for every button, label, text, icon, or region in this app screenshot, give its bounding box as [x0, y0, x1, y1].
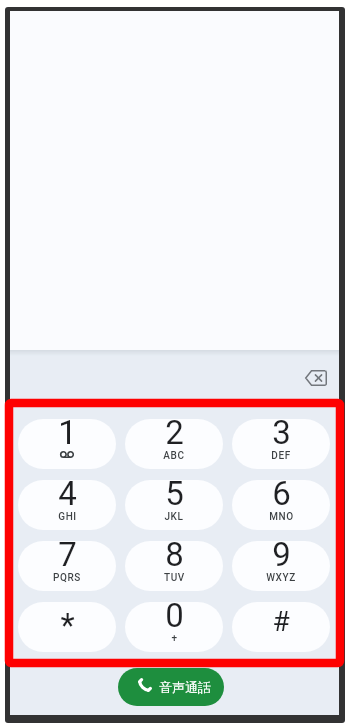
- button[interactable]: 6: [232, 480, 330, 530]
- staticText: 8: [165, 541, 184, 574]
- staticText: JKL: [164, 511, 184, 523]
- staticText: #: [272, 605, 290, 638]
- button[interactable]: *: [18, 602, 116, 652]
- button[interactable]: 2: [125, 419, 223, 469]
- button[interactable]: #: [232, 602, 330, 652]
- staticText: GHI: [58, 511, 77, 523]
- button[interactable]: 8: [125, 541, 223, 591]
- staticText: +: [171, 633, 178, 645]
- staticText: 9: [272, 541, 291, 574]
- button[interactable]: 4: [18, 480, 116, 530]
- staticText: 5: [165, 480, 184, 513]
- staticText: 3: [272, 419, 291, 452]
- button[interactable]: 0: [125, 602, 223, 652]
- staticText: 0: [165, 602, 184, 635]
- button[interactable]: 9: [232, 541, 330, 591]
- staticText: TUV: [164, 572, 185, 584]
- button[interactable]: 3: [232, 419, 330, 469]
- button[interactable]: [299, 362, 333, 394]
- staticText: 1: [58, 419, 77, 452]
- staticText: ABC: [163, 450, 185, 462]
- staticText: 7: [58, 541, 77, 574]
- staticText: 2: [165, 419, 184, 452]
- staticText: 音声通話: [159, 679, 211, 695]
- staticText: *: [60, 606, 75, 645]
- button[interactable]: 7: [18, 541, 116, 591]
- staticText: DEF: [271, 450, 291, 462]
- staticText: PQRS: [53, 572, 81, 584]
- button[interactable]: 1: [18, 419, 116, 469]
- button[interactable]: 音声通話: [118, 668, 224, 706]
- staticText: MNO: [269, 511, 294, 523]
- staticText: 4: [58, 480, 77, 513]
- staticText: WXYZ: [266, 572, 296, 584]
- button[interactable]: 5: [125, 480, 223, 530]
- staticText: 6: [272, 480, 291, 513]
